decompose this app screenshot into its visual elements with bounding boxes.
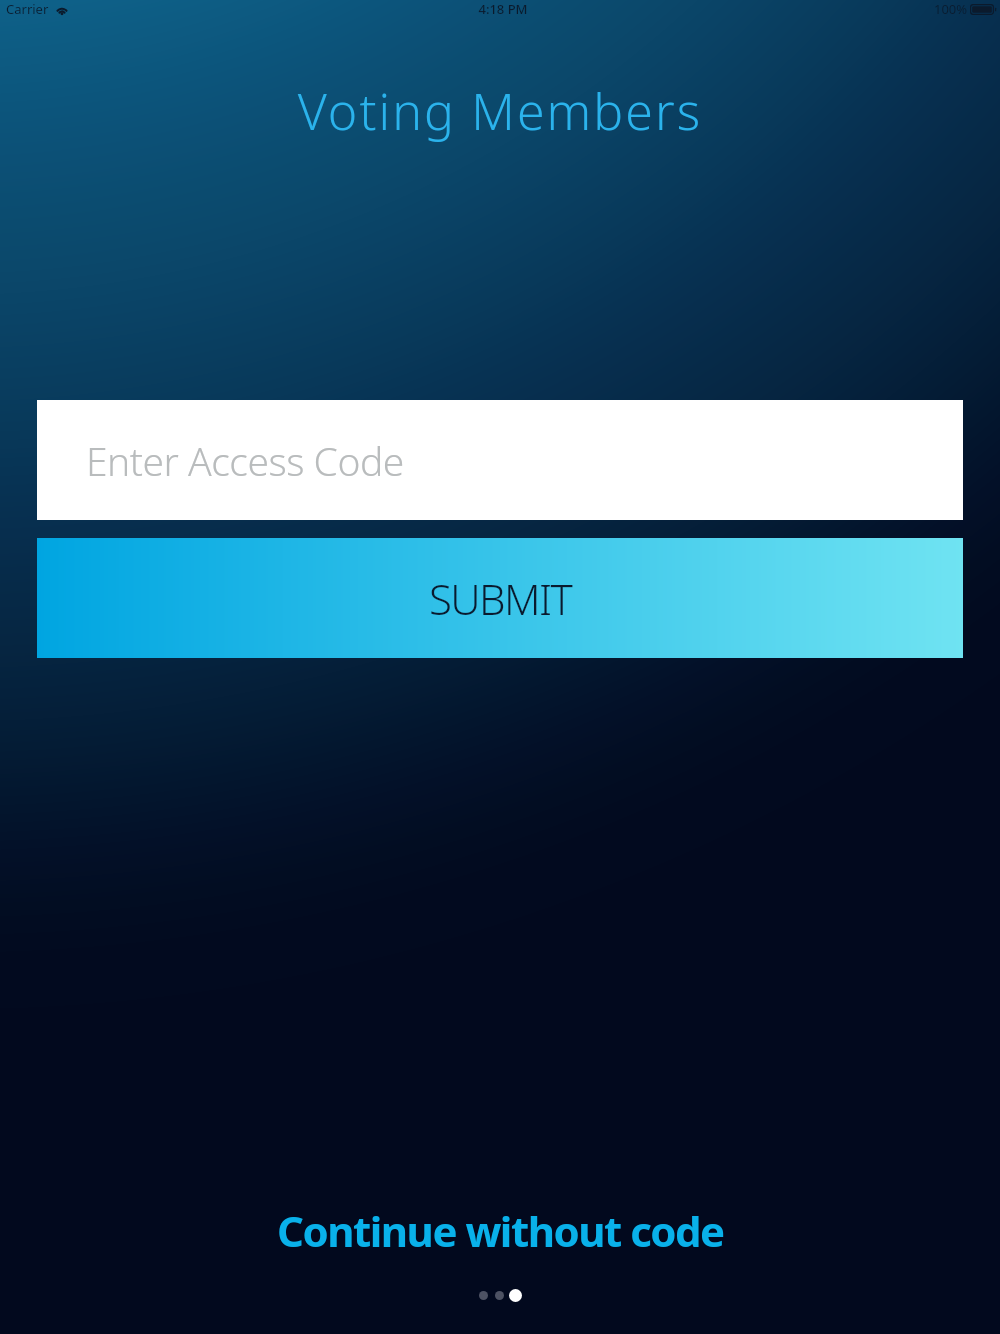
button[interactable]: Enter Access Code <box>37 400 963 520</box>
other: Wi-Fi <box>55 4 69 15</box>
button[interactable]: Page 1 <box>479 1291 488 1300</box>
button[interactable]: Continue without code <box>253 1182 748 1279</box>
button[interactable]: Page 3, current <box>509 1289 522 1302</box>
staticText: 100% <box>934 0 968 18</box>
button[interactable]: Page 2 <box>495 1291 504 1300</box>
staticText: Continue without code <box>277 1202 724 1259</box>
staticText: Carrier <box>6 0 49 18</box>
button[interactable]: SUBMIT <box>37 538 963 658</box>
staticText: Voting Members <box>0 77 1000 145</box>
staticText: 4:18 PM <box>3 0 1000 18</box>
staticText: SUBMIT <box>429 570 572 627</box>
staticText: Enter Access Code <box>86 434 404 487</box>
